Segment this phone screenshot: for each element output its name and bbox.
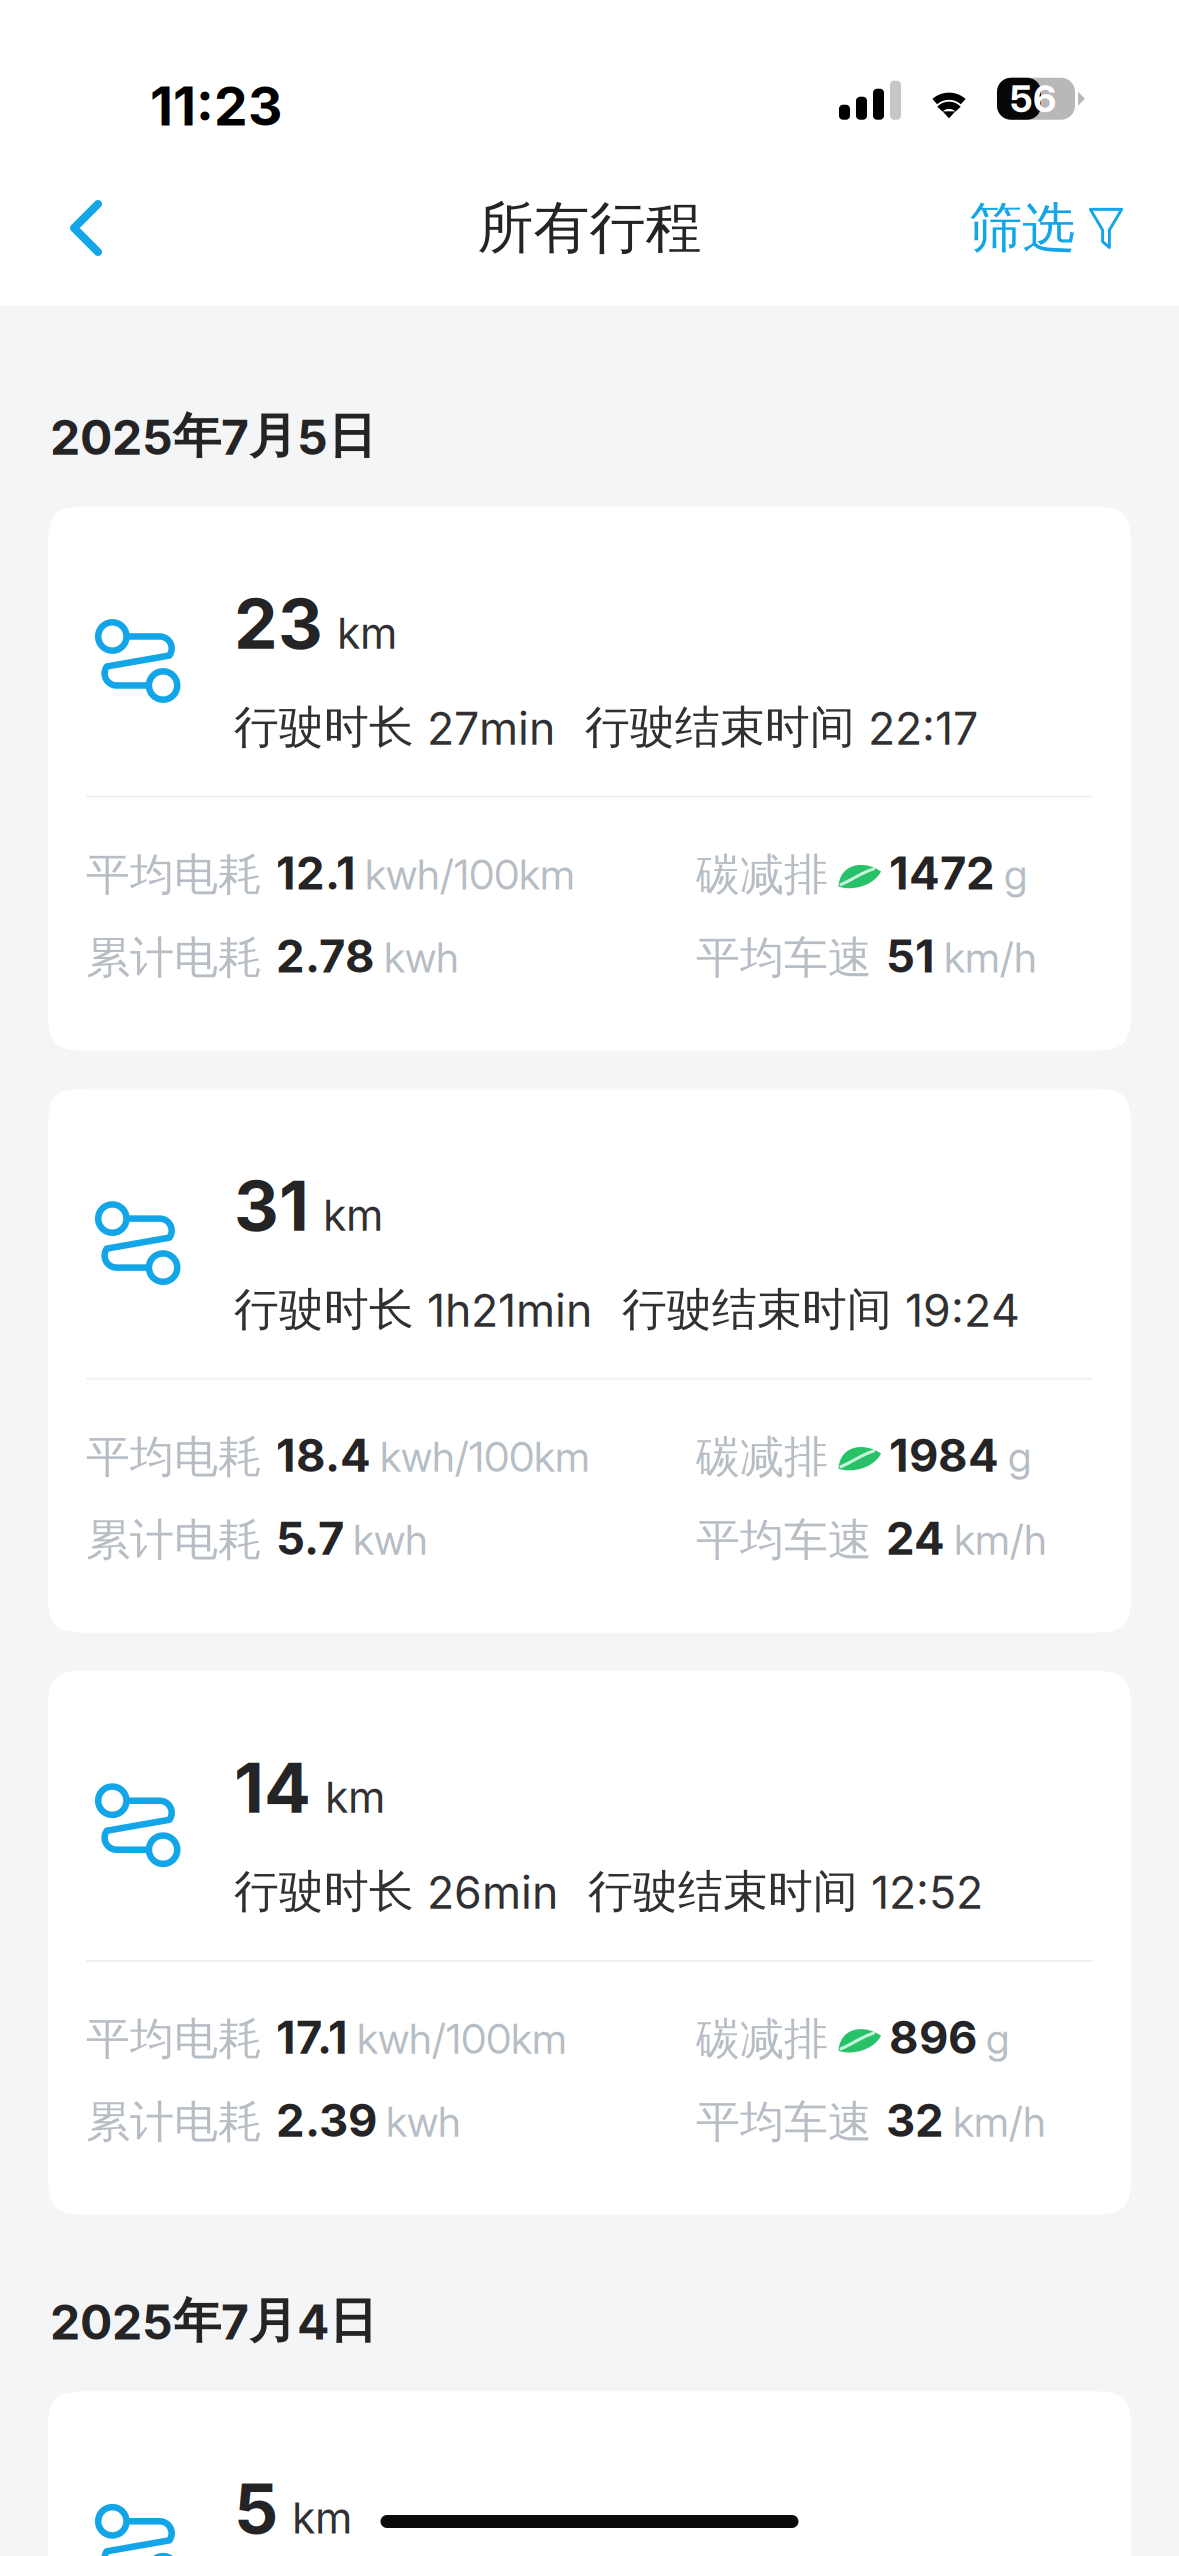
staticText: 17.1 — [276, 2010, 348, 2065]
staticText: 896 — [889, 2010, 977, 2065]
staticText: 0 — [844, 846, 875, 900]
staticText: km — [337, 607, 397, 659]
staticText: km — [292, 2492, 352, 2544]
staticText: km/h — [944, 932, 1037, 982]
staticText: g — [1004, 849, 1027, 899]
staticText: 31 — [234, 1164, 309, 1247]
staticText: 0 — [844, 2010, 875, 2065]
staticText: 平均电耗 — [86, 1429, 262, 1485]
staticText: 11:23 — [150, 74, 282, 138]
button[interactable]: Back — [72, 182, 130, 274]
staticText: 行驶时长 26min — [234, 1864, 558, 1920]
staticText: 18.4 — [276, 1428, 371, 1483]
staticText: 24 — [886, 1511, 945, 1566]
staticText: kwh — [386, 2097, 461, 2147]
staticText: 平均车速 — [696, 930, 872, 986]
staticText: kwh/100km — [380, 1432, 590, 1482]
button[interactable]: 5 — [48, 2391, 1131, 2556]
staticText: kwh — [353, 1515, 428, 1565]
staticText: 累计电耗 — [86, 1512, 262, 1568]
staticText: 行驶结束时间 22:17 — [585, 699, 978, 756]
staticText: 筛选 — [969, 194, 1075, 262]
staticText: 23 — [234, 581, 323, 665]
staticText: 1984 — [889, 1428, 999, 1483]
button[interactable]: 23 — [48, 506, 1131, 1051]
staticText: 1472 — [889, 846, 995, 900]
staticText: kwh/100km — [365, 849, 575, 899]
staticText: 2.39 — [276, 2093, 377, 2148]
staticText: 行驶结束时间 12:52 — [588, 1864, 983, 1920]
staticText: g — [986, 2014, 1009, 2064]
staticText: kwh/100km — [357, 2014, 567, 2064]
staticText: 所有行程 — [477, 193, 701, 263]
staticText: 12.1 — [276, 846, 356, 900]
button[interactable]: 31 — [48, 1089, 1131, 1633]
staticText: 累计电耗 — [86, 930, 262, 986]
staticText: 5.7 — [276, 1511, 344, 1566]
staticText: 14 — [234, 1746, 311, 1830]
staticText: kwh — [384, 932, 459, 982]
staticText: km — [325, 1771, 385, 1823]
staticText: km/h — [953, 2097, 1046, 2147]
staticText: 累计电耗 — [86, 2094, 262, 2150]
staticText: 行驶结束时间 19:24 — [622, 1281, 1020, 1338]
staticText: km — [323, 1189, 383, 1241]
staticText: 平均电耗 — [86, 847, 262, 903]
staticText: 平均电耗 — [86, 2011, 262, 2067]
staticText: 51 — [886, 929, 935, 983]
staticText: 2025年7月4日 — [50, 2291, 377, 2351]
staticText: 2025年7月5日 — [50, 406, 376, 466]
staticText: km/h — [954, 1515, 1047, 1565]
staticText: 32 — [886, 2093, 944, 2148]
staticText: 行驶时长 1h21min — [234, 1281, 592, 1338]
staticText: 2.78 — [276, 929, 375, 983]
staticText: g — [1008, 1432, 1031, 1482]
staticText: 碳减排 — [696, 2011, 828, 2067]
staticText: 5 — [234, 2466, 278, 2550]
staticText: 行驶时长 27min — [234, 699, 555, 756]
staticText: 碳减排 — [696, 847, 828, 903]
staticText: 56 — [1010, 76, 1056, 121]
staticText: 碳减排 — [696, 1429, 828, 1485]
button[interactable]: 14 — [48, 1671, 1131, 2215]
staticText: 平均车速 — [696, 1512, 872, 1568]
button[interactable]: 筛选 — [969, 176, 1123, 280]
staticText: 平均车速 — [696, 2094, 872, 2150]
staticText: 0 — [844, 1428, 875, 1483]
